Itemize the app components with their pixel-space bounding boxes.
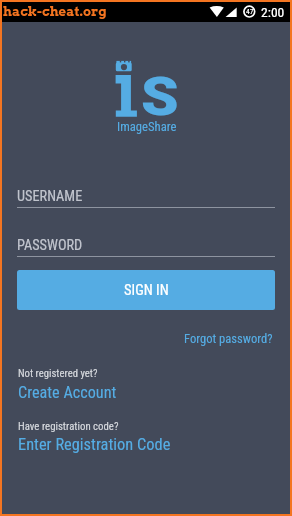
staticText: PASSWORD bbox=[17, 237, 83, 254]
button[interactable]: Create Account bbox=[18, 383, 117, 402]
button[interactable]: SIGN IN bbox=[17, 270, 275, 310]
staticText: hack-cheat.org bbox=[3, 3, 107, 19]
button[interactable]: Enter Registration Code bbox=[18, 435, 171, 454]
staticText: SIGN IN bbox=[124, 282, 169, 299]
button[interactable]: USERNAME bbox=[2, 187, 290, 211]
staticText: Have registration code? bbox=[18, 420, 119, 433]
staticText: USERNAME bbox=[17, 188, 83, 205]
staticText: 2:00 bbox=[261, 4, 285, 20]
button[interactable]: PASSWORD bbox=[2, 236, 290, 260]
staticText: S bbox=[141, 66, 180, 128]
button[interactable]: Forgot password? bbox=[184, 331, 273, 346]
staticText: Not registered yet? bbox=[18, 367, 98, 380]
staticText: 47 bbox=[246, 7, 254, 16]
staticText: ImageShare bbox=[117, 119, 177, 134]
